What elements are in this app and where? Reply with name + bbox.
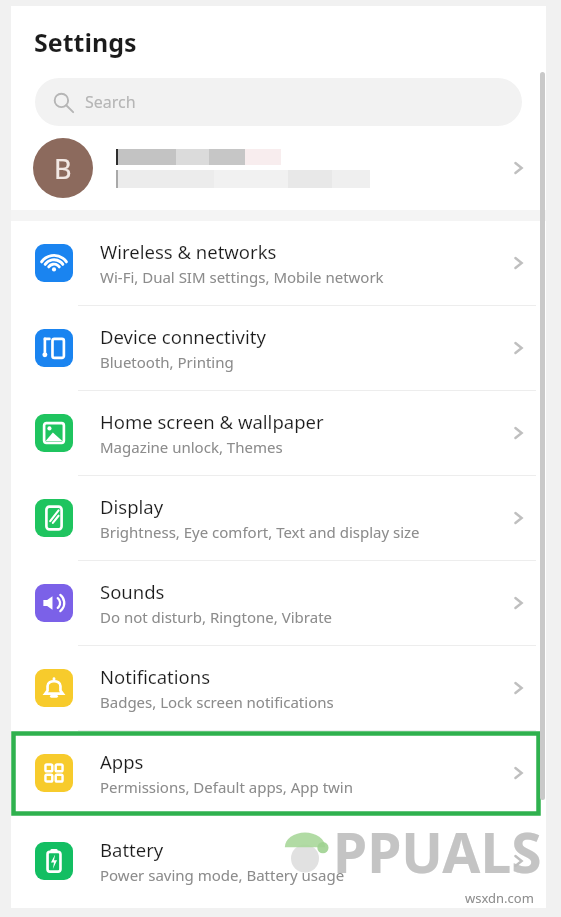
other: Open (505, 250, 531, 276)
button[interactable]: Wireless & networks (11, 221, 546, 305)
staticText: Settings (34, 25, 137, 59)
staticText: Power saving mode, Battery usage (100, 865, 345, 885)
staticText: Home screen & wallpaper (100, 409, 324, 434)
button[interactable]: Apps (11, 731, 546, 815)
button[interactable]: Search (35, 78, 522, 126)
staticText: PPUALS (333, 814, 542, 889)
other: Open (505, 420, 531, 446)
staticText: Notifications (100, 664, 211, 689)
other: Open (505, 155, 531, 181)
staticText: Display (100, 494, 164, 519)
other: Open (505, 675, 531, 701)
staticText: Wireless & networks (100, 239, 277, 264)
staticText: Magazine unlock, Themes (100, 437, 283, 457)
staticText: Search (85, 91, 136, 113)
button[interactable]: Battery (11, 819, 546, 903)
button[interactable]: Notifications (11, 646, 546, 730)
staticText: wsxdn.com (465, 889, 534, 907)
button[interactable]: Device connectivity (11, 306, 546, 390)
staticText: Do not disturb, Ringtone, Vibrate (100, 607, 333, 627)
staticText: Badges, Lock screen notifications (100, 692, 334, 712)
other: Open (505, 848, 531, 874)
button[interactable]: Sounds (11, 561, 546, 645)
staticText: Permissions, Default apps, App twin (100, 777, 354, 797)
button[interactable]: Home screen & wallpaper (11, 391, 546, 475)
staticText: B (54, 150, 72, 187)
other: Open (505, 505, 531, 531)
button[interactable]: B (11, 126, 546, 210)
other: Open (505, 760, 531, 786)
other: Open (505, 590, 531, 616)
staticText: Apps (100, 749, 144, 774)
staticText: Device connectivity (100, 324, 266, 349)
button[interactable]: Display (11, 476, 546, 560)
staticText: Wi-Fi, Dual SIM settings, Mobile network (100, 267, 384, 287)
staticText: Sounds (100, 579, 165, 604)
other: Open (505, 335, 531, 361)
staticText: Bluetooth, Printing (100, 352, 234, 372)
staticText: Brightness, Eye comfort, Text and displa… (100, 522, 420, 542)
staticText: Battery (100, 837, 164, 862)
